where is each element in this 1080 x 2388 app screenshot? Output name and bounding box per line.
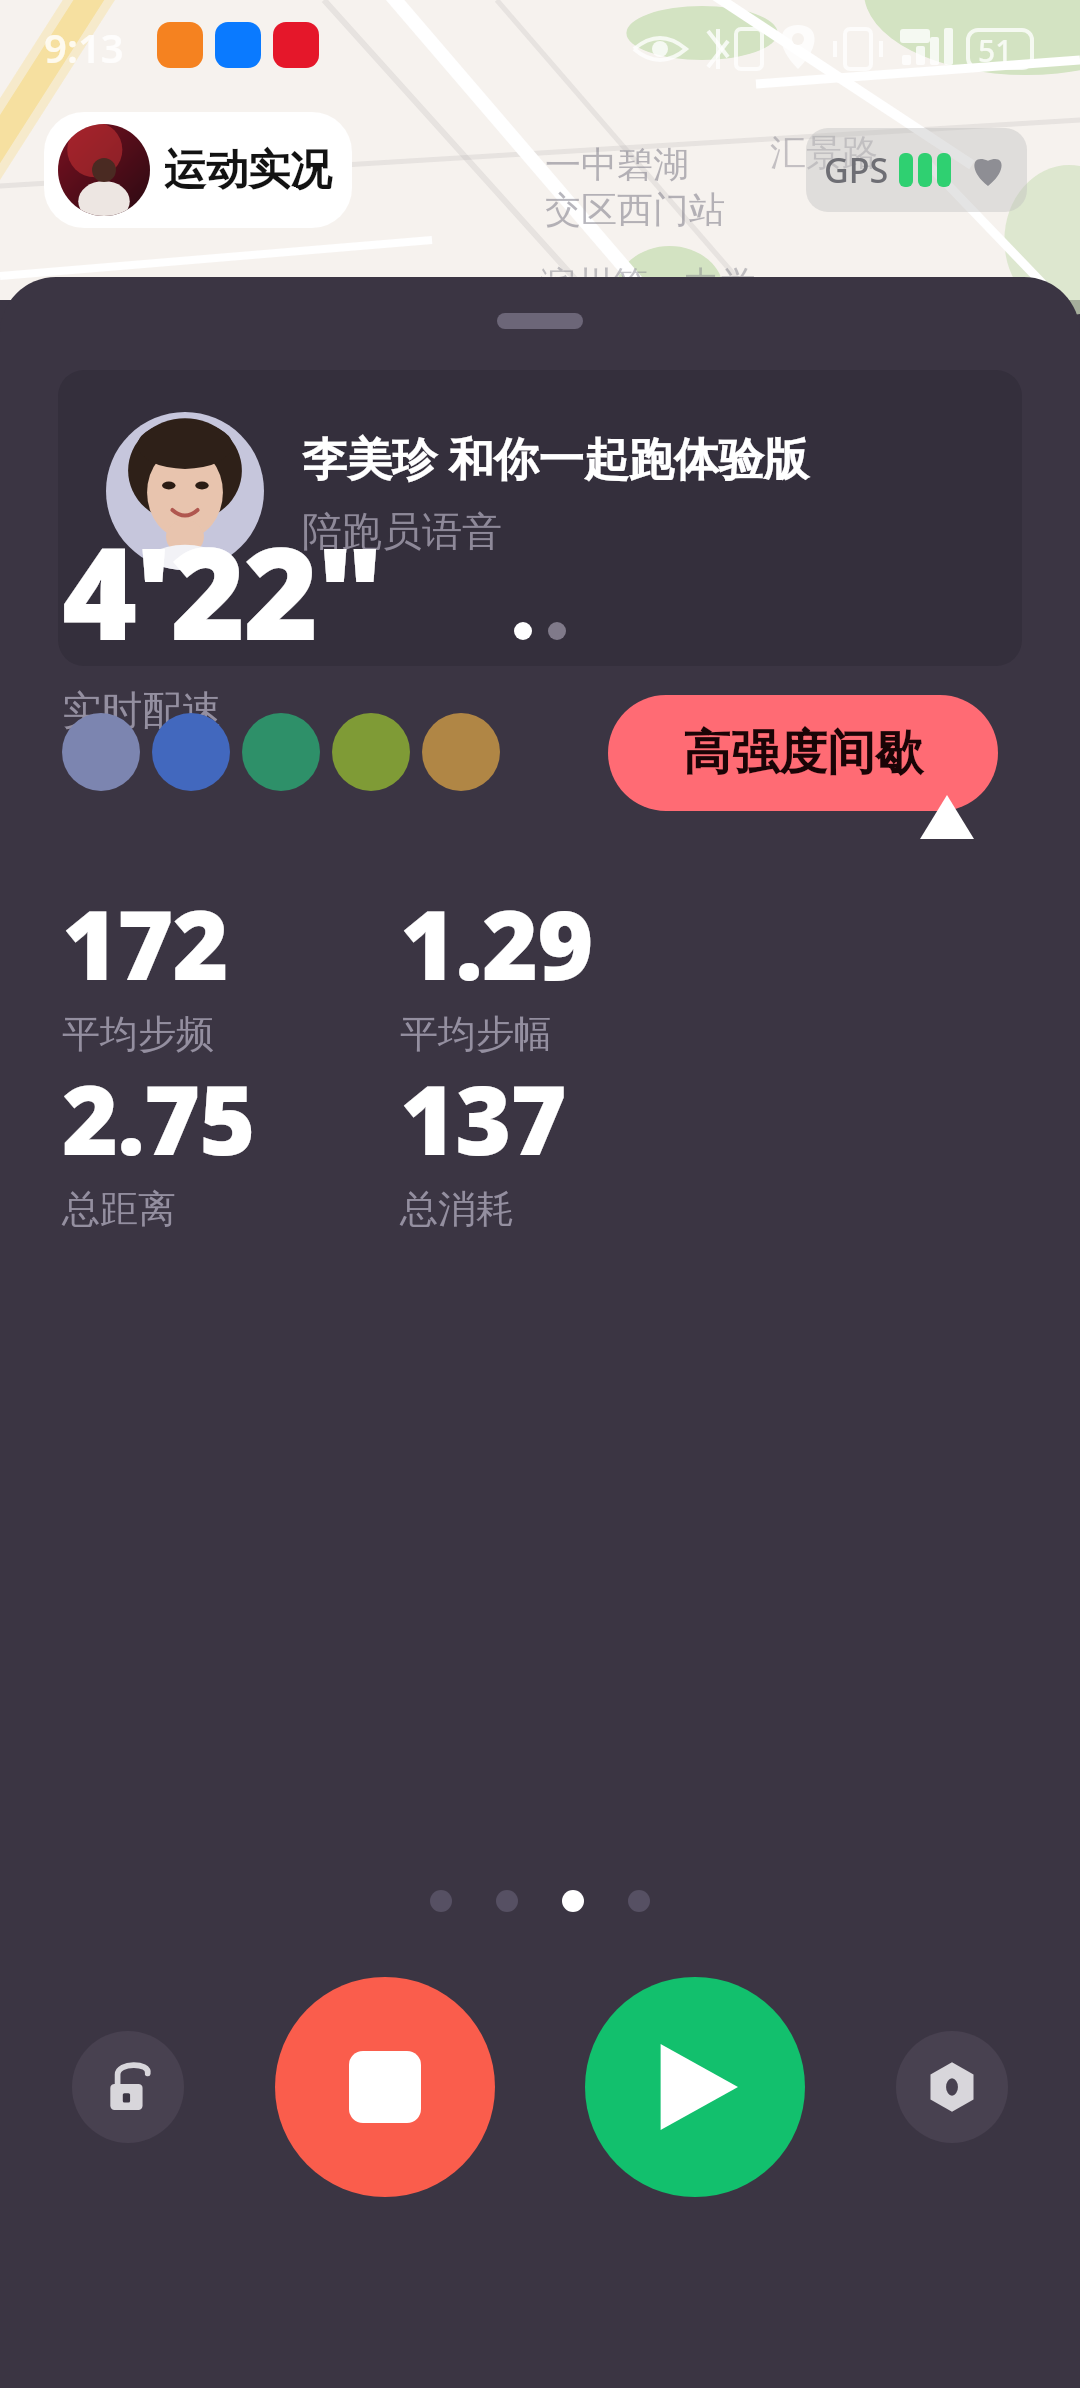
staticText: 平均步幅 <box>400 1010 552 1058</box>
button[interactable]: Resume <box>585 1977 805 2197</box>
button[interactable] <box>152 713 230 791</box>
staticText: 李美珍 和你一起跑体验版 <box>302 427 809 488</box>
staticText: 51 <box>978 30 1013 71</box>
button[interactable]: 李美珍 和你一起跑体验版 <box>58 370 1022 666</box>
staticText: 一中碧湖 <box>545 142 689 187</box>
staticText: 实时配速 <box>62 685 222 735</box>
button[interactable]: Settings <box>896 2031 1008 2143</box>
staticText: 交区西门站 <box>545 187 725 232</box>
staticText: 运动实况 <box>164 144 332 197</box>
staticText: 总消耗 <box>400 1185 514 1233</box>
staticText: 汇景路 <box>770 130 878 175</box>
button[interactable]: Stop <box>275 1977 495 2197</box>
staticText: GPS <box>824 147 889 193</box>
staticText: 滨州第一中学 <box>540 262 756 307</box>
button[interactable] <box>332 713 410 791</box>
button[interactable] <box>242 713 320 791</box>
staticText: 9:13 <box>44 20 124 74</box>
staticText: 4'22" <box>62 503 382 677</box>
staticText: 陪跑员语音 <box>302 506 502 556</box>
staticText: 2.75 <box>62 1052 255 1183</box>
staticText: 172 <box>62 877 228 1008</box>
staticText: 高强度间歇 <box>683 723 923 783</box>
button[interactable]: Lock <box>72 2031 184 2143</box>
button[interactable] <box>422 713 500 791</box>
staticText: 1.29 <box>400 877 593 1008</box>
staticText: 137 <box>400 1052 566 1183</box>
button[interactable] <box>62 713 140 791</box>
button[interactable]: 高强度间歇 <box>608 695 998 811</box>
staticText: 总距离 <box>62 1185 176 1233</box>
button[interactable]: 运动实况 <box>44 112 352 228</box>
button[interactable]: GPS <box>806 128 1027 212</box>
staticText: 平均步频 <box>62 1010 214 1058</box>
